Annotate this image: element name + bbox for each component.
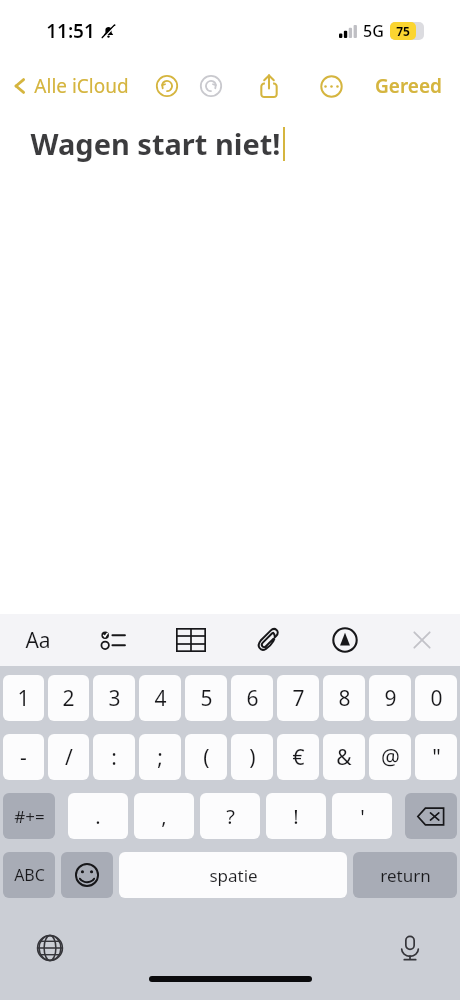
- staticText: :: [111, 743, 117, 772]
- staticText: ,: [161, 803, 167, 830]
- button[interactable]: #+=: [3, 793, 55, 839]
- staticText: -: [20, 743, 27, 772]
- button[interactable]: Dictate: [390, 928, 430, 968]
- button[interactable]: More: [309, 64, 353, 108]
- staticText: &: [336, 743, 352, 772]
- button[interactable]: 6: [231, 675, 273, 721]
- button[interactable]: Checklist: [76, 614, 152, 666]
- staticText: (: [203, 743, 210, 772]
- button[interactable]: .: [68, 793, 128, 839]
- button[interactable]: ?: [200, 793, 260, 839]
- staticText: ABC: [14, 864, 45, 886]
- staticText: 2: [62, 684, 75, 713]
- staticText: Wagen start niet!: [30, 124, 281, 163]
- staticText: ;: [157, 743, 163, 772]
- staticText: Gereed: [375, 73, 442, 99]
- staticText: !: [293, 803, 299, 830]
- staticText: /: [65, 743, 73, 772]
- staticText: ): [249, 743, 256, 772]
- staticText: 1: [17, 684, 30, 713]
- button[interactable]: Gereed: [363, 64, 454, 108]
- button[interactable]: Text format: [0, 614, 76, 666]
- staticText: ': [360, 803, 365, 830]
- button[interactable]: Alle iCloud: [0, 64, 135, 108]
- button[interactable]: 3: [93, 675, 135, 721]
- button[interactable]: Backspace: [405, 793, 457, 839]
- button[interactable]: return: [353, 852, 457, 898]
- button[interactable]: Table: [152, 614, 229, 666]
- button[interactable]: Markup: [306, 614, 383, 666]
- staticText: .: [95, 803, 101, 830]
- staticText: ": [432, 743, 441, 772]
- button[interactable]: @: [369, 734, 411, 780]
- button[interactable]: spatie: [119, 852, 347, 898]
- button[interactable]: -: [3, 734, 44, 780]
- button[interactable]: Attach: [229, 614, 306, 666]
- button[interactable]: 7: [277, 675, 319, 721]
- button[interactable]: Emoji: [61, 852, 113, 898]
- staticText: 8: [338, 684, 351, 713]
- button[interactable]: ": [415, 734, 457, 780]
- button[interactable]: Share: [247, 64, 291, 108]
- button[interactable]: 0: [415, 675, 457, 721]
- staticText: €: [292, 743, 305, 772]
- staticText: 5: [200, 684, 213, 713]
- button[interactable]: Redo: [189, 64, 233, 108]
- button[interactable]: ': [332, 793, 392, 839]
- button[interactable]: &: [323, 734, 365, 780]
- button[interactable]: 1: [3, 675, 44, 721]
- staticText: 3: [108, 684, 121, 713]
- staticText: 6: [246, 684, 259, 713]
- staticText: 5G: [363, 20, 384, 42]
- button[interactable]: 8: [323, 675, 365, 721]
- staticText: #+=: [14, 805, 45, 828]
- button[interactable]: €: [277, 734, 319, 780]
- button[interactable]: :: [93, 734, 135, 780]
- staticText: 9: [384, 684, 397, 713]
- button[interactable]: 9: [369, 675, 411, 721]
- button[interactable]: 4: [139, 675, 181, 721]
- staticText: spatie: [209, 864, 258, 887]
- staticText: 7: [292, 684, 305, 713]
- button[interactable]: 5: [185, 675, 227, 721]
- staticText: ?: [226, 803, 235, 830]
- button[interactable]: ABC: [3, 852, 55, 898]
- button[interactable]: ;: [139, 734, 181, 780]
- staticText: Alle iCloud: [34, 73, 129, 99]
- button[interactable]: ): [231, 734, 273, 780]
- button[interactable]: 2: [48, 675, 89, 721]
- staticText: 0: [430, 684, 443, 713]
- button[interactable]: /: [48, 734, 89, 780]
- staticText: Aa: [25, 626, 51, 655]
- button[interactable]: !: [266, 793, 326, 839]
- staticText: 11:51: [46, 18, 95, 44]
- staticText: return: [380, 864, 431, 887]
- staticText: @: [381, 743, 400, 772]
- staticText: 4: [154, 684, 167, 713]
- button[interactable]: (: [185, 734, 227, 780]
- button[interactable]: Change keyboard: [30, 928, 70, 968]
- button[interactable]: Undo: [145, 64, 189, 108]
- button[interactable]: Close: [383, 614, 460, 666]
- staticText: 75: [396, 23, 410, 39]
- button[interactable]: ,: [134, 793, 194, 839]
